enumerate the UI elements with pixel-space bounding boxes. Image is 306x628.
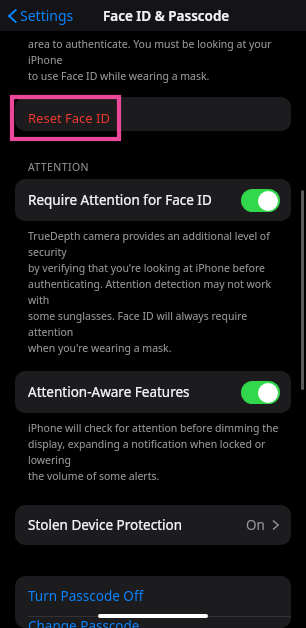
staticText: Turn Passcode Off xyxy=(28,587,144,605)
button[interactable]: Require Attention for Face ID xyxy=(15,179,291,221)
button[interactable]: Turn Passcode Off xyxy=(15,576,291,616)
staticText: Face ID & Passcode xyxy=(103,7,230,25)
staticText: Stolen Device Protection xyxy=(28,516,246,534)
button[interactable]: Settings xyxy=(0,1,84,30)
staticText: Attention-Aware Features xyxy=(28,383,241,401)
staticText: Reset Face ID xyxy=(28,109,110,127)
staticText: Change Passcode xyxy=(28,617,140,628)
button[interactable]: Toggle switch, on xyxy=(241,381,280,404)
button[interactable]: Attention-Aware Features xyxy=(15,371,291,413)
staticText: On xyxy=(246,516,265,534)
staticText: ATTENTION xyxy=(28,160,89,174)
button[interactable]: Change Passcode xyxy=(15,617,291,628)
staticText: iPhone will check for attention before d… xyxy=(28,421,294,483)
staticText: Require Attention for Face ID xyxy=(28,191,241,209)
button[interactable]: Toggle switch, on xyxy=(241,189,280,212)
button[interactable]: Stolen Device Protection xyxy=(15,505,291,545)
staticText: area to authenticate. You must be lookin… xyxy=(28,37,294,83)
staticText: Settings xyxy=(20,6,74,25)
staticText: TrueDepth camera provides an additional … xyxy=(28,229,294,355)
button[interactable]: Reset Face ID xyxy=(12,97,119,139)
